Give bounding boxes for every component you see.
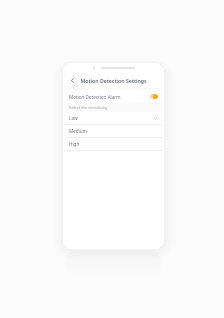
button[interactable]: Back [67, 75, 78, 86]
staticText: High [69, 141, 80, 147]
staticText: Motion Detection Settings [79, 77, 148, 84]
button[interactable]: High [65, 138, 162, 150]
staticText: Medium [69, 128, 87, 134]
button[interactable]: Medium [65, 125, 162, 137]
button[interactable]: Motion Detection Alarm [65, 90, 162, 103]
staticText: Select the sensitivity [69, 105, 107, 110]
staticText: Low [69, 115, 78, 121]
staticText: Motion Detection Alarm [69, 94, 121, 100]
button[interactable]: Low [65, 112, 162, 124]
button[interactable]: Motion Detection Alarm toggle [150, 94, 158, 99]
